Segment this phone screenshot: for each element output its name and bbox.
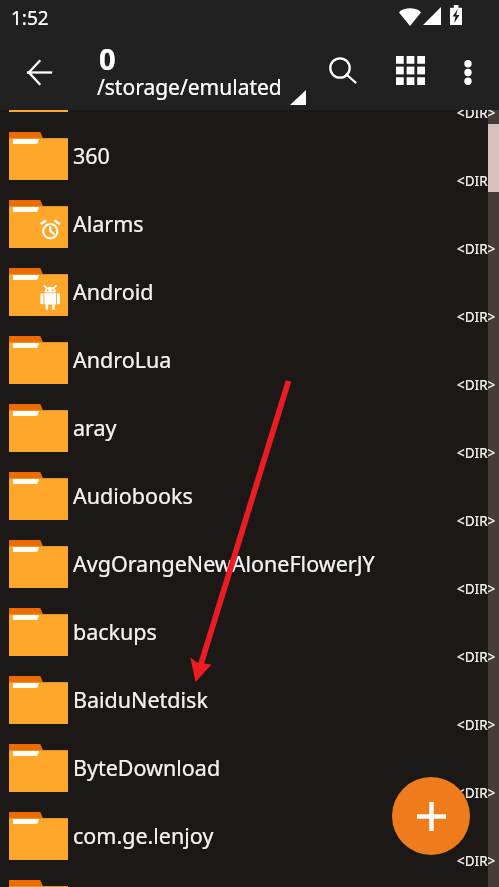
button[interactable]: Grid view — [382, 42, 438, 98]
staticText: com.ge.lenjoy — [73, 821, 214, 850]
staticText: Audiobooks — [73, 481, 193, 510]
staticText: <DIR> — [457, 110, 496, 122]
staticText: <DIR> — [457, 716, 496, 734]
staticText: 0 — [99, 39, 116, 78]
button[interactable]: 360 — [0, 114, 499, 182]
button[interactable]: 3LM — [0, 110, 499, 114]
staticText: <DIR> — [457, 580, 496, 598]
staticText: backups — [73, 617, 157, 646]
staticText: 1:52 — [11, 5, 49, 31]
staticText: BaiduNetdisk — [73, 685, 208, 714]
button[interactable]: aray — [0, 386, 499, 454]
button[interactable]: AndroLua — [0, 318, 499, 386]
staticText: /storage/emulated — [97, 73, 282, 102]
staticText: AndroLua — [73, 345, 172, 374]
button[interactable]: Audiobooks — [0, 454, 499, 522]
button[interactable]: com.xiaomi.h — [0, 862, 499, 887]
staticText: <DIR> — [457, 512, 496, 530]
staticText: <DIR> — [457, 308, 496, 326]
staticText: <DIR> — [457, 784, 496, 802]
staticText: <DIR> — [457, 240, 496, 258]
button[interactable]: Android — [0, 250, 499, 318]
staticText: <DIR> — [457, 852, 496, 870]
staticText: <DIR> — [457, 172, 496, 190]
button[interactable]: More options — [440, 44, 496, 100]
staticText: <DIR> — [457, 444, 496, 462]
staticText: AvgOrangeNewAloneFlowerJY — [73, 549, 375, 578]
staticText: <DIR> — [457, 648, 496, 666]
staticText: ByteDownload — [73, 753, 221, 782]
button[interactable]: com.ge.lenjoy — [0, 794, 499, 862]
button[interactable]: Alarms — [0, 182, 499, 250]
button[interactable]: BaiduNetdisk — [0, 658, 499, 726]
staticText: Alarms — [73, 209, 144, 238]
button[interactable]: Search — [314, 42, 370, 98]
button[interactable]: Back — [11, 44, 67, 100]
staticText: <DIR> — [457, 376, 496, 394]
staticText: 360 — [73, 141, 110, 170]
staticText: Android — [73, 277, 154, 306]
button[interactable]: backups — [0, 590, 499, 658]
staticText: aray — [73, 413, 117, 442]
button[interactable]: AvgOrangeNewAloneFlowerJY — [0, 522, 499, 590]
button[interactable]: ByteDownload — [0, 726, 499, 794]
button[interactable]: Add — [392, 777, 470, 855]
